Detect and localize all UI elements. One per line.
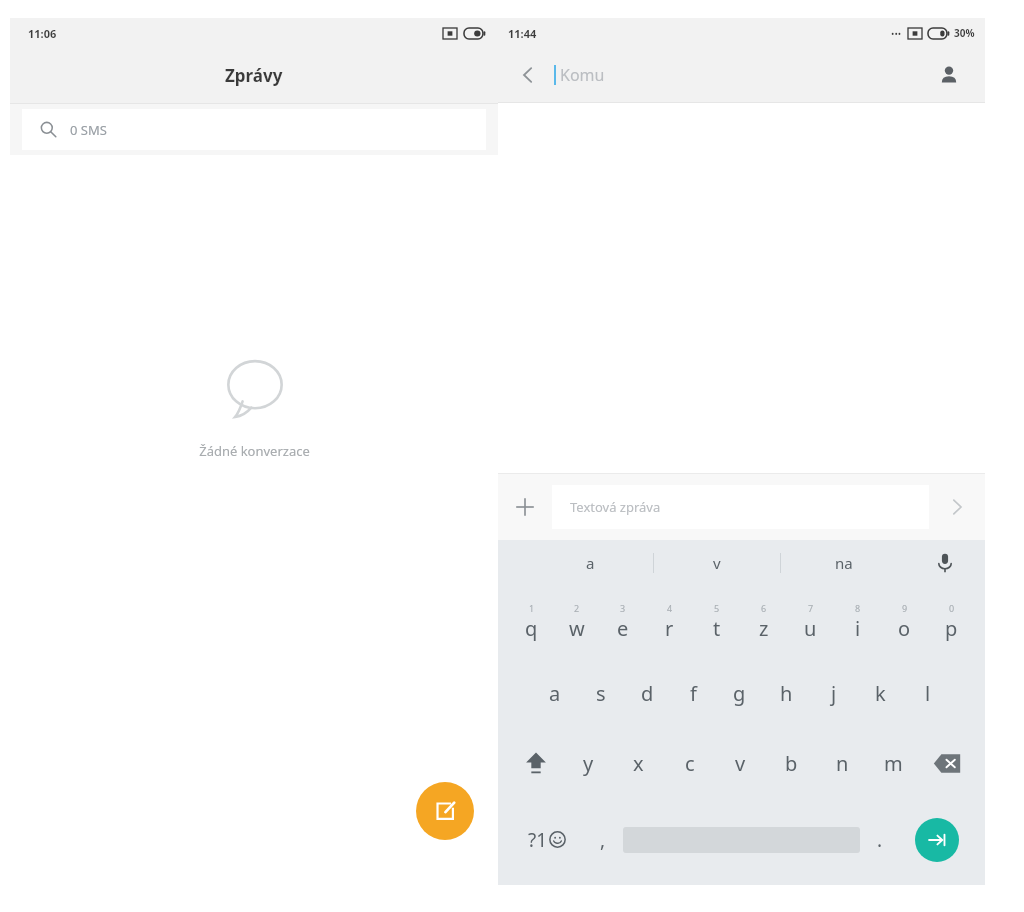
- button[interactable]: 0 SMS: [22, 109, 486, 150]
- staticText: 1: [529, 602, 535, 614]
- button[interactable]: ,: [583, 798, 623, 881]
- button[interactable]: d: [624, 658, 670, 728]
- button[interactable]: 6: [740, 586, 787, 658]
- button[interactable]: 1: [508, 586, 554, 658]
- button[interactable]: 4: [646, 586, 693, 658]
- staticText: c: [685, 750, 695, 777]
- staticText: 3: [620, 602, 626, 614]
- staticText: 0 SMS: [70, 121, 107, 139]
- staticText: •••: [891, 27, 902, 39]
- staticText: a: [549, 680, 561, 707]
- staticText: 11:06: [28, 26, 57, 41]
- button[interactable]: Symboly: [510, 798, 583, 881]
- button[interactable]: Zpět: [506, 53, 550, 97]
- button[interactable]: l: [904, 658, 951, 728]
- button[interactable]: h: [763, 658, 810, 728]
- button[interactable]: f: [670, 658, 716, 728]
- staticText: l: [925, 680, 931, 707]
- staticText: t: [713, 615, 721, 642]
- staticText: 7: [808, 602, 814, 614]
- staticText: p: [945, 615, 958, 642]
- staticText: x: [633, 750, 644, 777]
- button[interactable]: y: [563, 728, 613, 798]
- staticText: f: [690, 680, 697, 707]
- button[interactable]: c: [664, 728, 715, 798]
- staticText: Žádné konverzace: [199, 442, 310, 460]
- button[interactable]: Odeslat: [929, 479, 985, 535]
- button[interactable]: 8: [834, 586, 881, 658]
- button[interactable]: na: [781, 540, 907, 586]
- button[interactable]: x: [613, 728, 664, 798]
- staticText: 9: [902, 602, 908, 614]
- button[interactable]: Smazat: [919, 728, 975, 798]
- button[interactable]: n: [817, 728, 868, 798]
- staticText: Komu: [560, 64, 605, 86]
- button[interactable]: m: [868, 728, 919, 798]
- button[interactable]: k: [857, 658, 904, 728]
- button[interactable]: j: [810, 658, 857, 728]
- staticText: e: [617, 615, 629, 642]
- staticText: 0: [949, 602, 955, 614]
- staticText: Textová zpráva: [570, 498, 661, 516]
- staticText: 5: [714, 602, 720, 614]
- staticText: y: [583, 750, 594, 777]
- staticText: q: [525, 615, 538, 642]
- button[interactable]: 2: [554, 586, 600, 658]
- staticText: z: [759, 615, 769, 642]
- button[interactable]: 3: [600, 586, 646, 658]
- staticText: k: [875, 680, 886, 707]
- staticText: .: [877, 827, 883, 853]
- button[interactable]: Textová zpráva: [552, 485, 929, 529]
- staticText: na: [835, 553, 853, 573]
- button[interactable]: g: [716, 658, 763, 728]
- button[interactable]: Hlasový vstup: [923, 541, 967, 585]
- staticText: d: [641, 680, 654, 707]
- staticText: ?1: [528, 827, 548, 853]
- button[interactable]: Mezerník: [623, 798, 860, 881]
- button[interactable]: 5: [693, 586, 740, 658]
- button[interactable]: b: [766, 728, 817, 798]
- button[interactable]: a: [532, 658, 578, 728]
- staticText: n: [836, 750, 849, 777]
- staticText: j: [831, 680, 837, 707]
- button[interactable]: Přidat: [498, 480, 552, 534]
- staticText: b: [785, 750, 798, 777]
- staticText: 30%: [954, 26, 975, 40]
- button[interactable]: Kontakty: [927, 53, 971, 97]
- button[interactable]: .: [860, 798, 900, 881]
- staticText: v: [713, 553, 721, 573]
- staticText: u: [804, 615, 817, 642]
- staticText: a: [586, 553, 595, 573]
- staticText: ,: [600, 827, 606, 853]
- staticText: s: [596, 680, 606, 707]
- button[interactable]: 7: [787, 586, 834, 658]
- button[interactable]: v: [654, 540, 780, 586]
- staticText: g: [733, 680, 746, 707]
- staticText: 4: [667, 602, 673, 614]
- staticText: o: [898, 615, 911, 642]
- button[interactable]: 0: [928, 586, 975, 658]
- staticText: 6: [761, 602, 767, 614]
- staticText: i: [855, 615, 861, 642]
- staticText: 2: [574, 602, 580, 614]
- staticText: m: [884, 750, 903, 777]
- staticText: 11:44: [508, 26, 537, 41]
- button[interactable]: 9: [881, 586, 928, 658]
- button[interactable]: Enter: [900, 798, 973, 881]
- button[interactable]: v: [715, 728, 766, 798]
- button[interactable]: Shift: [508, 728, 563, 798]
- staticText: w: [569, 615, 585, 642]
- staticText: r: [665, 615, 674, 642]
- button[interactable]: a: [528, 540, 653, 586]
- staticText: 8: [855, 602, 861, 614]
- staticText: h: [780, 680, 793, 707]
- button[interactable]: Nová zpráva: [416, 782, 474, 840]
- staticText: Zprávy: [225, 64, 283, 87]
- staticText: v: [735, 750, 746, 777]
- button[interactable]: s: [578, 658, 624, 728]
